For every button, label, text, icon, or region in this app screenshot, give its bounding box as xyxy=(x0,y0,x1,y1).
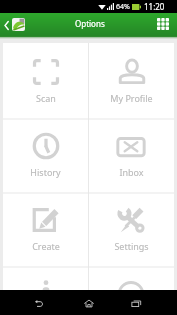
staticText: Inbox xyxy=(119,166,144,178)
button[interactable]: Back xyxy=(19,290,58,315)
staticText: Settings xyxy=(114,240,149,252)
staticText: 11:20 xyxy=(144,1,165,12)
staticText: Scan xyxy=(36,92,56,104)
button[interactable]: History xyxy=(3,119,88,193)
button[interactable]: Scan xyxy=(3,45,88,119)
button[interactable]: Back xyxy=(2,14,27,36)
button[interactable]: Recents xyxy=(117,290,156,315)
staticText: History xyxy=(30,166,61,178)
button[interactable]: Apps grid xyxy=(152,13,174,35)
button[interactable] xyxy=(88,267,174,292)
button[interactable]: Inbox xyxy=(88,119,174,193)
staticText: My Profile xyxy=(110,92,153,104)
button[interactable]: Settings xyxy=(88,193,174,267)
button[interactable]: Home xyxy=(69,290,108,315)
staticText: Create xyxy=(32,240,60,252)
staticText: 64% xyxy=(116,2,130,12)
staticText: Options xyxy=(75,18,105,29)
button[interactable]: My Profile xyxy=(88,45,174,119)
button[interactable] xyxy=(3,267,88,292)
button[interactable]: Create xyxy=(3,193,88,267)
